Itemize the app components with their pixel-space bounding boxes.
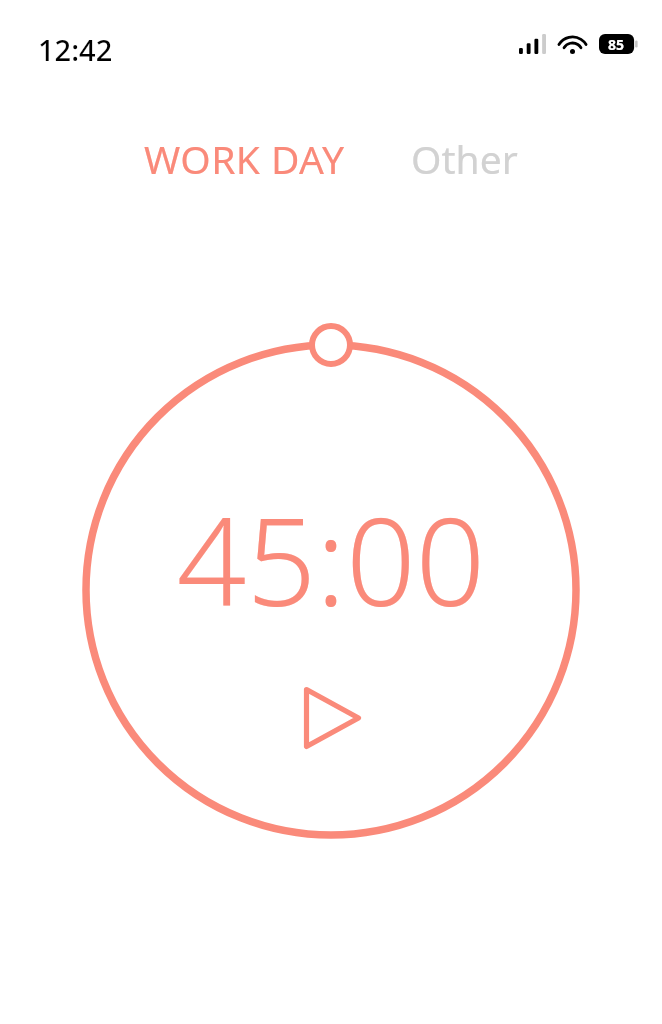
staticText: Other	[411, 132, 518, 185]
button[interactable]: Other	[401, 126, 528, 191]
staticText: 45:00	[0, 476, 662, 642]
staticText: WORK DAY	[144, 132, 345, 185]
button[interactable]: Start timer	[284, 670, 380, 766]
button[interactable]: WORK DAY	[134, 126, 355, 191]
staticText: 12:42	[38, 30, 113, 69]
staticText: 85	[608, 35, 625, 54]
